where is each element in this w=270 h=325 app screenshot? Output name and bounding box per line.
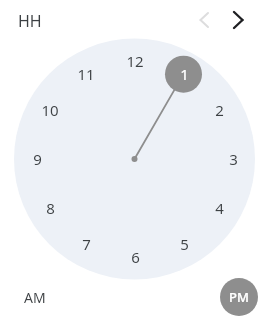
- button[interactable]: 6: [116, 238, 154, 276]
- staticText: 9: [33, 149, 42, 169]
- button[interactable]: AM: [15, 278, 55, 316]
- staticText: 5: [180, 234, 189, 254]
- button[interactable]: 11: [67, 55, 105, 93]
- staticText: 3: [229, 149, 238, 169]
- staticText: 1: [180, 64, 189, 84]
- button[interactable]: 3: [214, 140, 252, 178]
- button[interactable]: HH: [18, 10, 58, 32]
- staticText: 2: [215, 100, 224, 120]
- button[interactable]: 9: [18, 140, 56, 178]
- button[interactable]: 12: [116, 42, 154, 80]
- staticText: 7: [82, 234, 91, 254]
- button[interactable]: Previous: [190, 6, 218, 34]
- button[interactable]: 10: [31, 91, 69, 129]
- button[interactable]: 8: [31, 189, 69, 227]
- staticText: HH: [18, 10, 42, 32]
- button[interactable]: 2: [200, 91, 238, 129]
- button[interactable]: 7: [67, 225, 105, 263]
- staticText: 12: [126, 51, 144, 71]
- button[interactable]: 5: [165, 225, 203, 263]
- staticText: AM: [24, 288, 46, 307]
- staticText: 10: [41, 100, 59, 120]
- button[interactable]: 4: [200, 189, 238, 227]
- staticText: 8: [46, 198, 55, 218]
- button[interactable]: 1: [165, 55, 203, 93]
- button[interactable]: PM: [220, 278, 258, 316]
- button[interactable]: Next: [224, 6, 252, 34]
- staticText: 11: [77, 64, 95, 84]
- staticText: PM: [229, 288, 249, 306]
- staticText: 6: [131, 247, 140, 267]
- staticText: 4: [215, 198, 224, 218]
